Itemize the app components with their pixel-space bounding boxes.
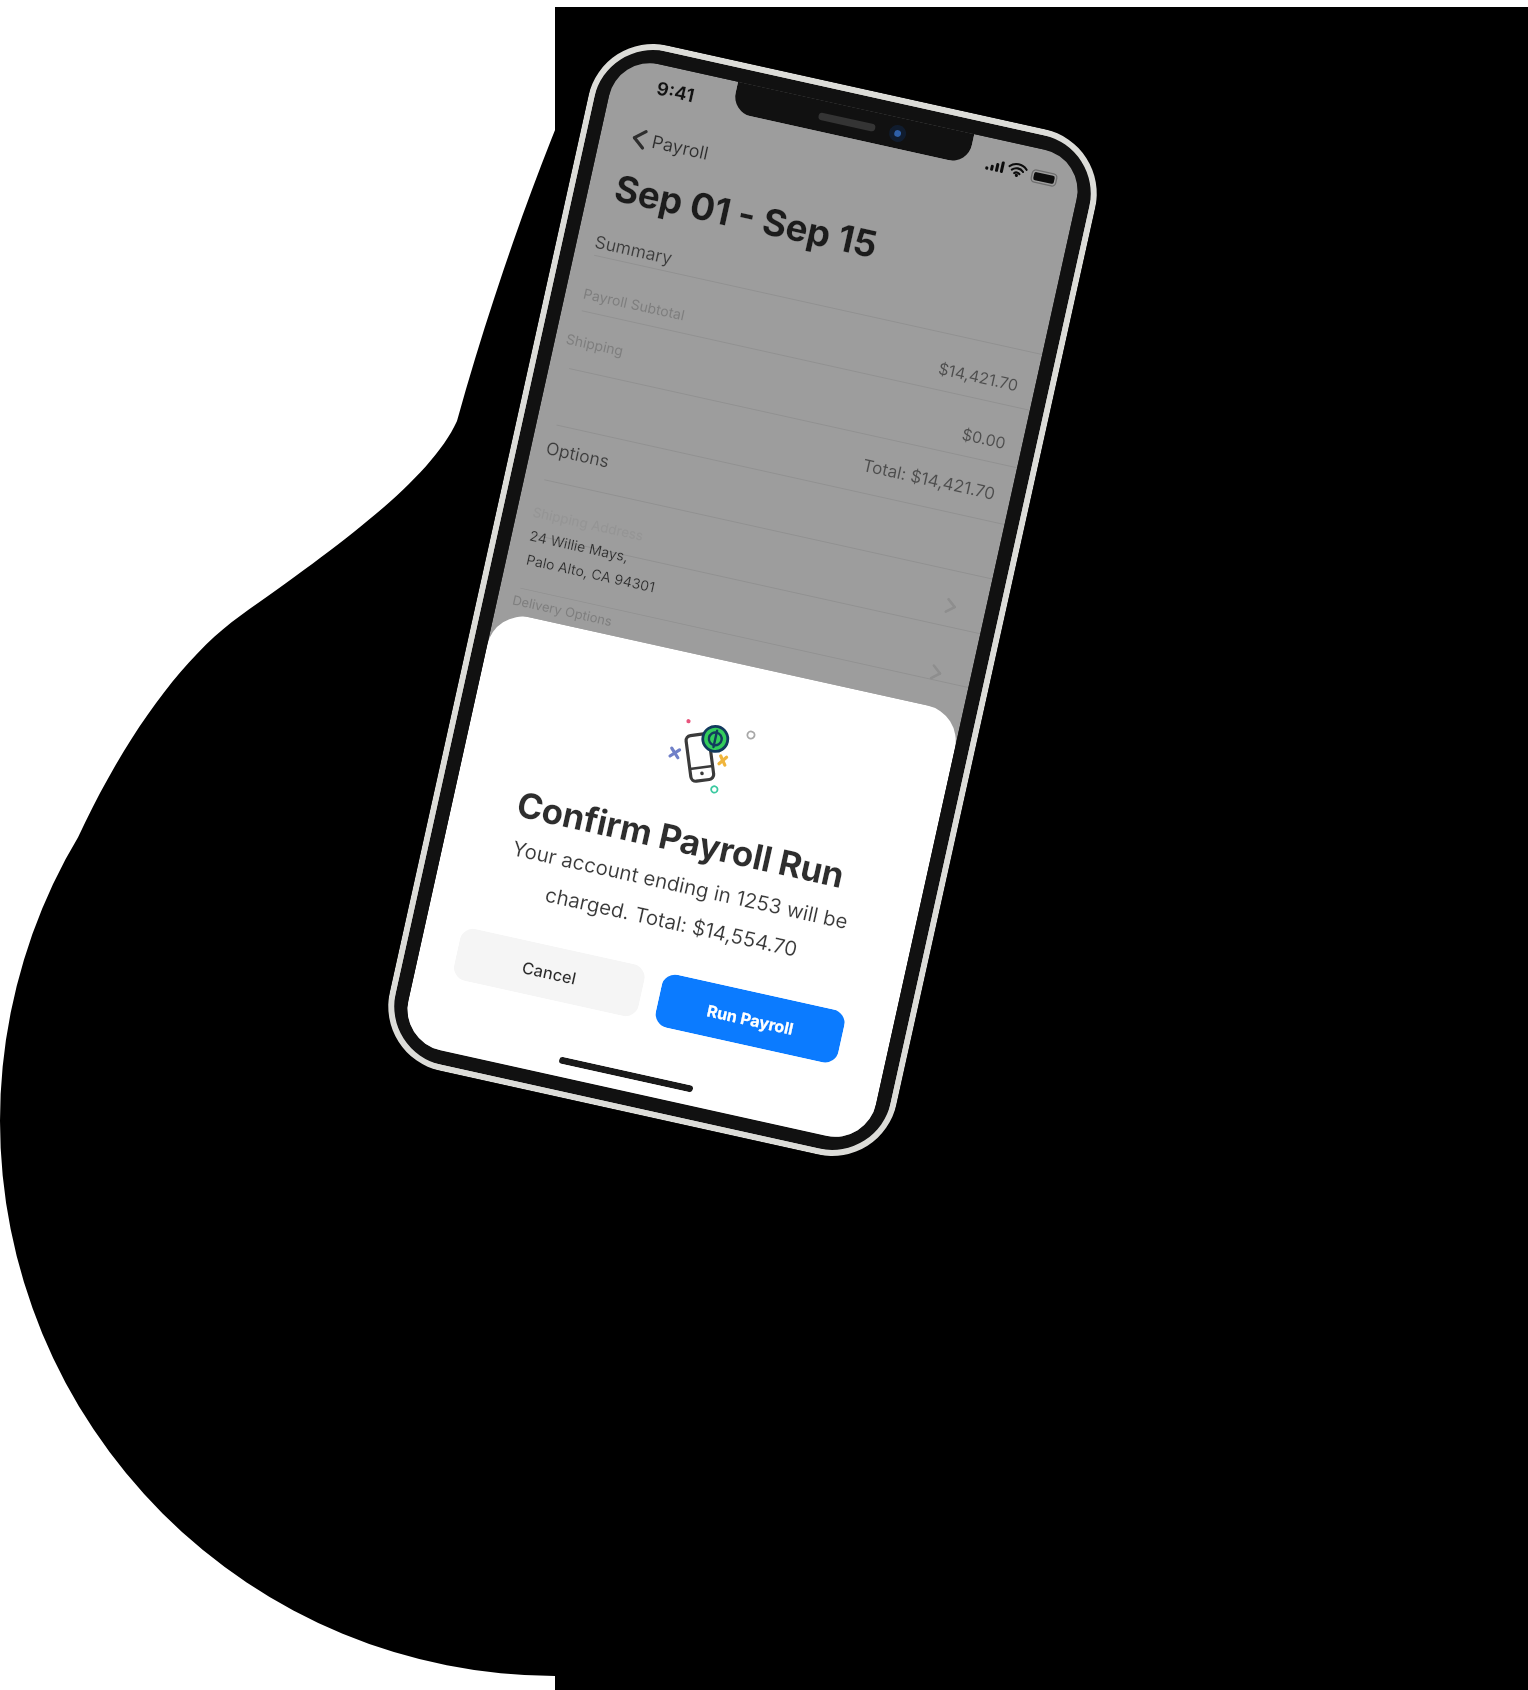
staticText: Payroll [650,131,711,165]
staticText: Shipping [565,330,626,359]
staticText: Payroll Subtotal [582,285,687,324]
button[interactable]: Run Payroll [653,972,847,1065]
staticText: Confirm Payroll Run [513,783,848,896]
staticText: Total: $14,421.70 [861,455,997,505]
button[interactable]: Cancel [451,926,647,1019]
staticText: 24 Willie Mays, [528,527,630,565]
staticText: charged. Total: $14,554.70 [543,882,800,962]
staticText: Palo Alto, CA 94301 [525,550,658,596]
staticText: Run Payroll [705,1000,795,1038]
staticText: Summary [593,231,675,268]
staticText: Shipping Address [531,504,645,544]
staticText: Sep 01 - Sep 15 [610,165,882,267]
staticText: Options [544,437,612,472]
staticText: 9:41 [655,77,696,106]
staticText: Cancel [520,957,578,989]
staticText: $0.00 [960,424,1008,452]
staticText: Delivery Options [511,591,614,629]
staticText: Your account ending in 1253 will be [510,835,850,934]
button[interactable]: Payroll [626,124,713,167]
staticText: $14,421.70 [937,358,1021,394]
